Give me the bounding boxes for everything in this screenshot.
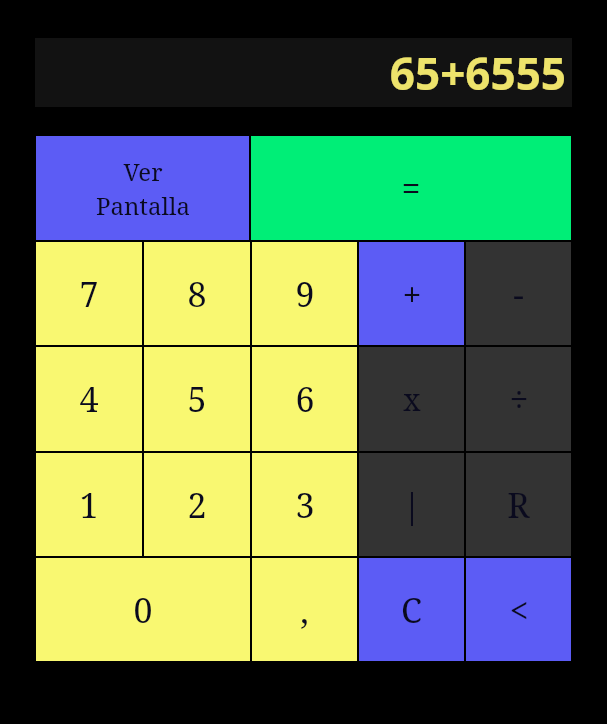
staticText: ,: [300, 587, 309, 633]
button[interactable]: Multiply: [358, 346, 465, 452]
button[interactable]: 9: [251, 241, 358, 346]
button[interactable]: Equals: [250, 135, 572, 241]
button[interactable]: Minus: [465, 241, 572, 346]
button[interactable]: Ver Pantalla: [35, 135, 250, 241]
staticText: +: [402, 271, 422, 317]
button[interactable]: 5: [143, 346, 251, 452]
staticText: 1: [79, 482, 99, 528]
staticText: 65+6555: [389, 43, 566, 103]
button[interactable]: 1: [35, 452, 143, 557]
button[interactable]: 4: [35, 346, 143, 452]
staticText: 7: [79, 271, 99, 317]
button[interactable]: 0: [35, 557, 251, 662]
staticText: <: [509, 587, 529, 633]
staticText: ÷: [509, 376, 529, 422]
button[interactable]: Plus: [358, 241, 465, 346]
staticText: 5: [187, 376, 207, 422]
button[interactable]: Root: [465, 452, 572, 557]
staticText: 3: [295, 482, 315, 528]
staticText: C: [401, 587, 422, 633]
staticText: 8: [187, 271, 207, 317]
staticText: 0: [133, 587, 153, 633]
button[interactable]: 7: [35, 241, 143, 346]
button[interactable]: 3: [251, 452, 358, 557]
button[interactable]: Backspace: [465, 557, 572, 662]
staticText: -: [513, 271, 524, 317]
button[interactable]: 8: [143, 241, 251, 346]
button[interactable]: Decimal comma: [251, 557, 358, 662]
staticText: 9: [295, 271, 315, 317]
staticText: 4: [79, 376, 99, 422]
staticText: R: [507, 482, 530, 528]
staticText: 6: [295, 376, 315, 422]
staticText: 2: [187, 482, 207, 528]
staticText: =: [401, 165, 421, 211]
staticText: x: [403, 379, 421, 420]
button[interactable]: Absolute value: [358, 452, 465, 557]
button[interactable]: Clear: [358, 557, 465, 662]
staticText: |: [402, 482, 422, 528]
staticText: Ver Pantalla: [96, 155, 190, 222]
button[interactable]: 2: [143, 452, 251, 557]
button[interactable]: 6: [251, 346, 358, 452]
button[interactable]: 65+6555: [35, 38, 572, 107]
button[interactable]: Divide: [465, 346, 572, 452]
